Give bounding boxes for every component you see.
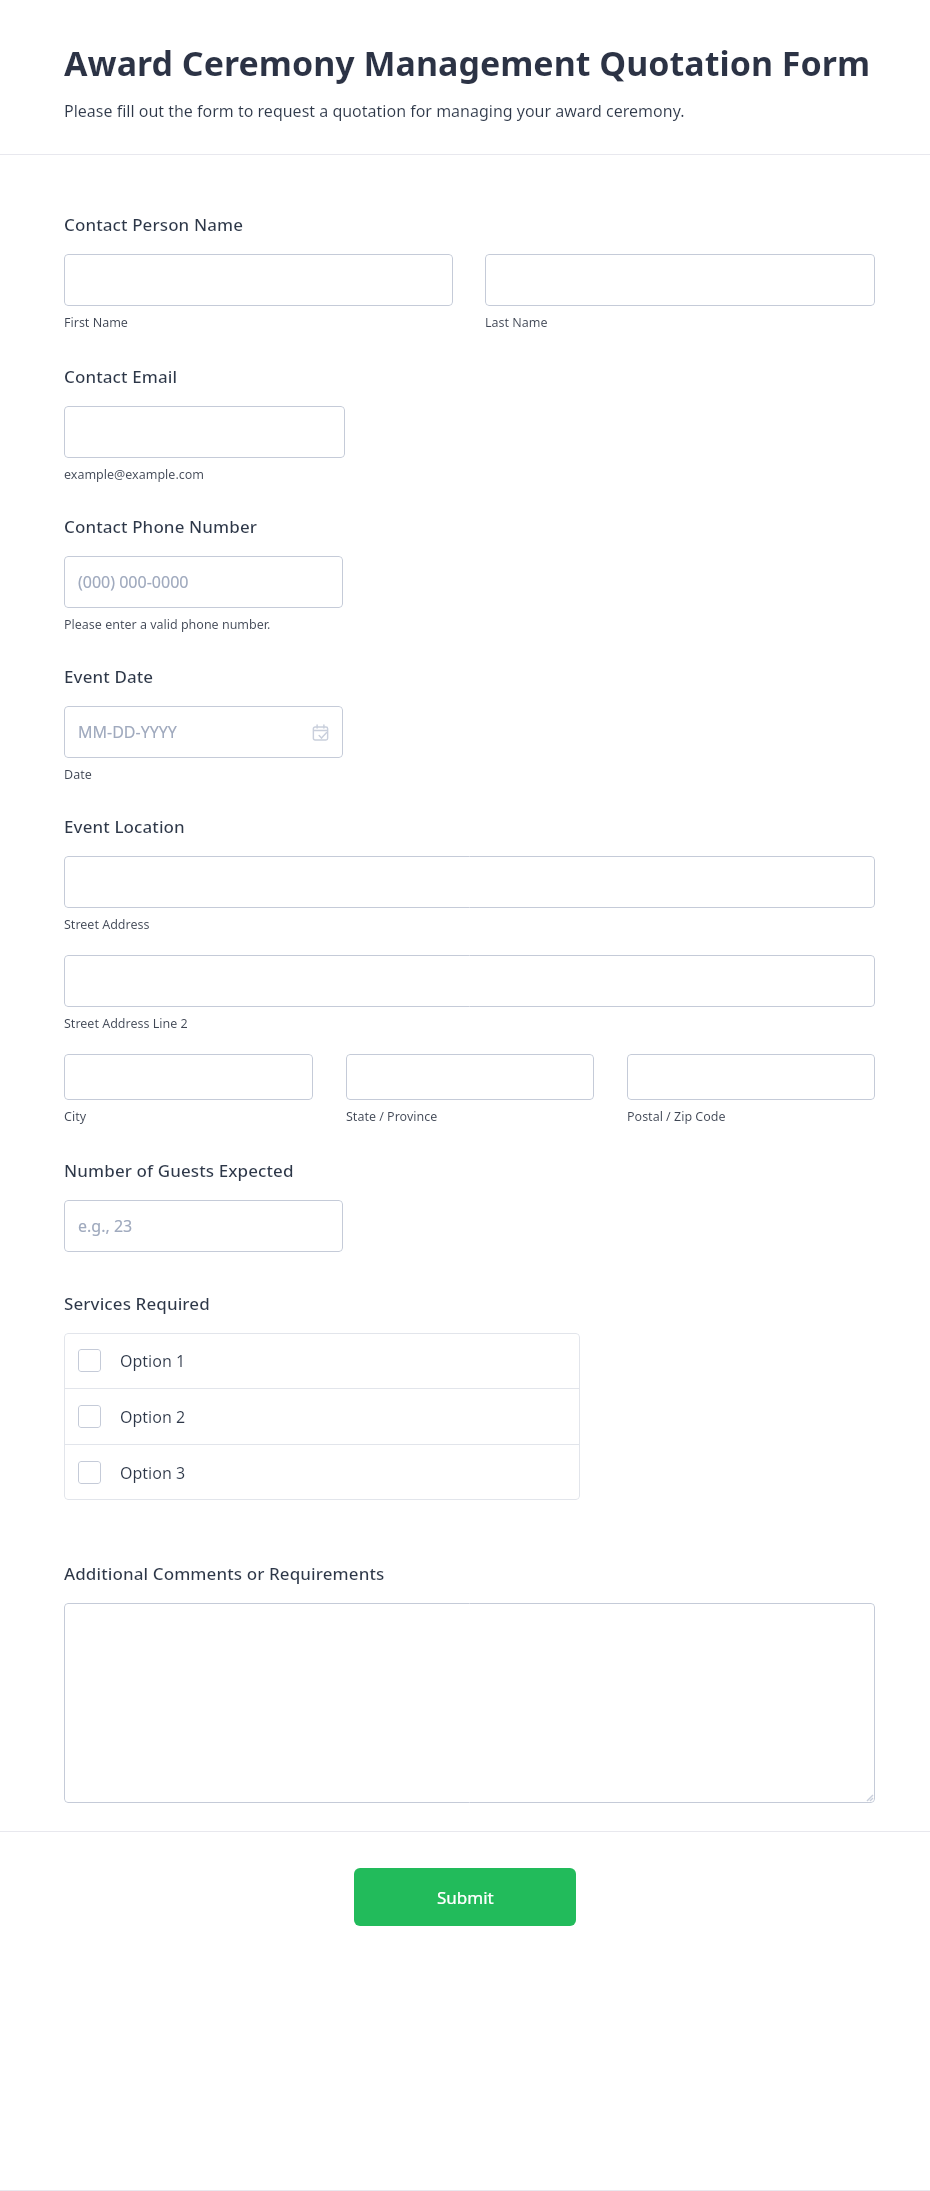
- staticText: Event Location: [64, 815, 185, 838]
- button[interactable]: [64, 955, 875, 1007]
- button[interactable]: [64, 856, 875, 908]
- button[interactable]: [64, 1603, 875, 1803]
- staticText: Contact Email: [64, 365, 178, 388]
- button[interactable]: (000) 000-0000: [64, 556, 343, 608]
- button[interactable]: [64, 406, 345, 458]
- button[interactable]: [64, 1054, 313, 1100]
- button[interactable]: [627, 1054, 875, 1100]
- button[interactable]: Submit: [354, 1868, 576, 1926]
- staticText: City: [64, 1108, 87, 1125]
- staticText: Postal / Zip Code: [627, 1108, 726, 1125]
- staticText: Option 3: [120, 1462, 186, 1484]
- staticText: Option 2: [120, 1406, 186, 1428]
- staticText: Option 1: [120, 1350, 186, 1372]
- staticText: (000) 000-0000: [78, 571, 189, 593]
- staticText: Street Address Line 2: [64, 1015, 188, 1032]
- staticText: Contact Phone Number: [64, 515, 258, 538]
- staticText: Last Name: [485, 314, 548, 331]
- staticText: e.g., 23: [78, 1215, 133, 1237]
- button[interactable]: [346, 1054, 594, 1100]
- button[interactable]: [64, 254, 453, 306]
- button[interactable]: [485, 254, 875, 306]
- staticText: Additional Comments or Requirements: [64, 1562, 385, 1585]
- button[interactable]: Option 1: [64, 1333, 580, 1388]
- staticText: Award Ceremony Management Quotation Form: [64, 40, 871, 86]
- staticText: Services Required: [64, 1292, 210, 1315]
- staticText: State / Province: [346, 1108, 438, 1125]
- staticText: Event Date: [64, 665, 154, 688]
- staticText: Please fill out the form to request a qu…: [64, 100, 685, 122]
- button[interactable]: MM-DD-YYYY: [64, 706, 343, 758]
- staticText: Date: [64, 766, 92, 783]
- staticText: Number of Guests Expected: [64, 1159, 294, 1182]
- staticText: MM-DD-YYYY: [78, 721, 177, 743]
- staticText: First Name: [64, 314, 128, 331]
- staticText: Contact Person Name: [64, 213, 244, 236]
- staticText: Street Address: [64, 916, 150, 933]
- button[interactable]: e.g., 23: [64, 1200, 343, 1252]
- staticText: example@example.com: [64, 466, 204, 483]
- staticText: Please enter a valid phone number.: [64, 616, 271, 633]
- button[interactable]: Option 2: [64, 1389, 580, 1444]
- button[interactable]: Option 3: [64, 1445, 580, 1500]
- staticText: Submit: [437, 1886, 494, 1909]
